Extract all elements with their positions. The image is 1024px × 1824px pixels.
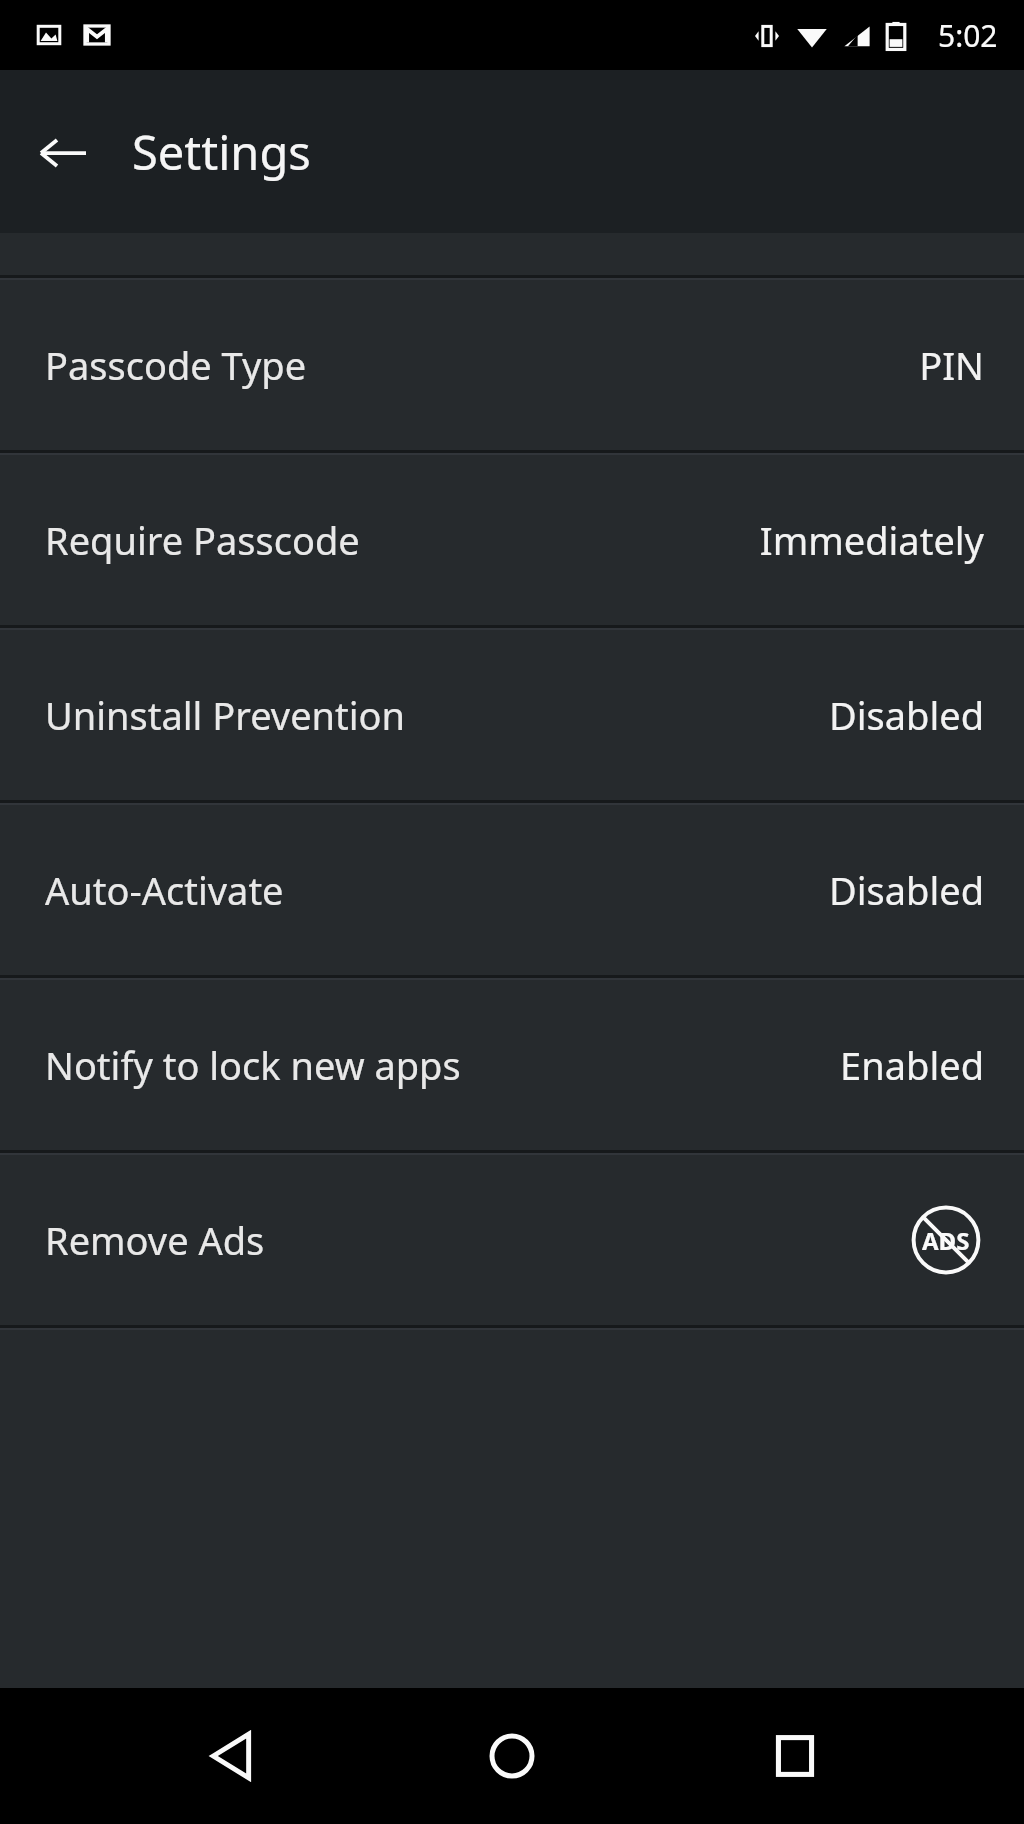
staticText: ADS	[922, 1224, 970, 1257]
button[interactable]: Remove Ads	[0, 1155, 1024, 1325]
button[interactable]: Require Passcode	[0, 455, 1024, 625]
button[interactable]: Remove Ads	[908, 1202, 984, 1278]
staticText: PIN	[919, 339, 984, 391]
staticText: Notify to lock new apps	[45, 1039, 461, 1091]
button[interactable]: Recent apps	[749, 1710, 841, 1802]
staticText: Auto-Activate	[45, 864, 284, 916]
button[interactable]: Auto-Activate	[0, 805, 1024, 975]
button[interactable]: Notify to lock new apps	[0, 980, 1024, 1150]
button[interactable]: Passcode Type	[0, 280, 1024, 450]
staticText: Remove Ads	[45, 1214, 265, 1266]
staticText: Uninstall Prevention	[45, 689, 406, 741]
staticText: Disabled	[828, 864, 984, 916]
button[interactable]: Back	[186, 1710, 278, 1802]
staticText: Settings	[132, 120, 311, 184]
staticText: Immediately	[759, 514, 984, 566]
staticText: Require Passcode	[45, 514, 360, 566]
button[interactable]: Back	[30, 119, 96, 185]
staticText: Enabled	[840, 1039, 984, 1091]
staticText: Disabled	[828, 689, 984, 741]
staticText: Passcode Type	[45, 339, 307, 391]
button[interactable]: Uninstall Prevention	[0, 630, 1024, 800]
button[interactable]: Home	[466, 1710, 558, 1802]
staticText: 5:02	[938, 15, 998, 56]
